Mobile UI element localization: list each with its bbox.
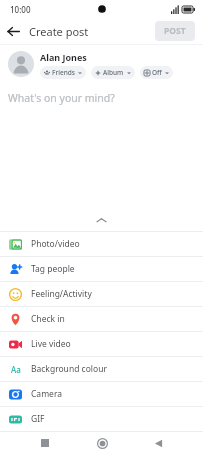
staticText: Camera <box>31 388 62 400</box>
button[interactable]: Back <box>0 18 26 44</box>
staticText: Aa <box>11 364 21 375</box>
button[interactable]: Recents <box>34 434 56 452</box>
staticText: What's on your mind? <box>8 91 115 105</box>
button[interactable]: POST <box>155 21 195 41</box>
button[interactable]: GIF <box>0 407 203 431</box>
button[interactable]: Off <box>140 66 173 79</box>
staticText: Feeling/Activity <box>31 288 92 300</box>
button[interactable]: Camera <box>0 382 203 406</box>
button[interactable]: Aa <box>0 357 203 381</box>
button[interactable]: Tag people <box>0 257 203 281</box>
staticText: POST <box>164 25 186 37</box>
staticText: Create post <box>29 24 89 39</box>
staticText: Photo/video <box>31 238 80 250</box>
button[interactable]: Live video <box>0 332 203 356</box>
button[interactable]: Home <box>91 434 113 452</box>
staticText: Tag people <box>31 263 75 275</box>
staticText: Check in <box>31 313 65 325</box>
staticText: Friends <box>52 68 75 77</box>
staticText: Live video <box>31 338 71 350</box>
button[interactable]: Friends <box>40 66 86 79</box>
button[interactable]: Check in <box>0 307 203 331</box>
staticText: Background colour <box>31 363 107 375</box>
staticText: Off <box>152 68 162 77</box>
button[interactable]: Album <box>91 66 135 79</box>
button[interactable]: Feeling/Activity <box>0 282 203 306</box>
staticText: 10:00 <box>10 4 31 15</box>
button[interactable]: Photo/video <box>0 232 203 256</box>
staticText: Album <box>103 68 124 77</box>
button[interactable]: Back <box>147 434 169 452</box>
staticText: Alan Jones <box>40 51 87 63</box>
staticText: GIF <box>31 413 45 425</box>
button[interactable]: Expand <box>0 209 203 231</box>
